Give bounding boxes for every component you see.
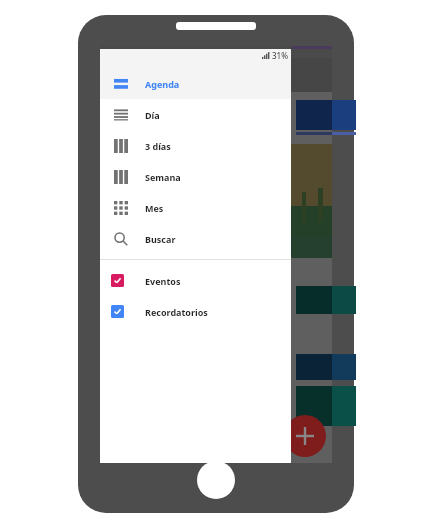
button[interactable]: Día: [100, 99, 291, 130]
button[interactable]: Agenda: [100, 68, 291, 99]
staticText: 3 días: [145, 140, 171, 152]
button[interactable]: Buscar: [100, 223, 291, 254]
button[interactable]: Mes: [100, 192, 291, 223]
staticText: Eventos: [145, 275, 181, 287]
staticText: Día: [145, 109, 160, 121]
staticText: Buscar: [145, 233, 176, 245]
staticText: Semana: [145, 171, 181, 183]
button[interactable]: Create event: [284, 415, 326, 457]
button[interactable]: Recordatorios: [100, 296, 291, 327]
staticText: 31%: [272, 50, 288, 61]
staticText: Mes: [145, 202, 164, 214]
staticText: Recordatorios: [145, 306, 208, 318]
button[interactable]: 3 días: [100, 130, 291, 161]
staticText: Agenda: [145, 78, 180, 90]
button[interactable]: Eventos: [100, 265, 291, 296]
button[interactable]: Semana: [100, 161, 291, 192]
